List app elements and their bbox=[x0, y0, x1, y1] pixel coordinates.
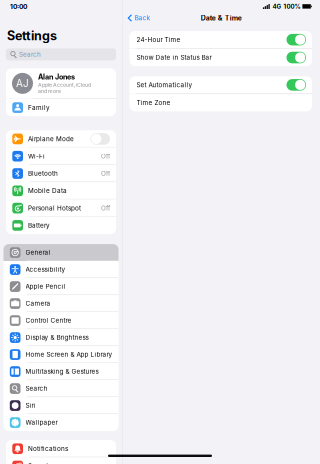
button[interactable]: Personal Hotspot bbox=[6, 199, 116, 217]
staticText: Date & Time bbox=[201, 14, 242, 22]
staticText: Apple Pencil bbox=[25, 283, 65, 290]
staticText: Accessibility bbox=[25, 266, 65, 273]
staticText: Mobile Data bbox=[28, 187, 67, 195]
staticText: Settings bbox=[7, 28, 57, 43]
staticText: Display & Brightness bbox=[25, 334, 88, 341]
staticText: Wi-Fi bbox=[28, 152, 45, 160]
staticText: 100% bbox=[283, 3, 300, 10]
staticText: Sounds bbox=[28, 462, 51, 464]
button[interactable]: Home Screen & App Library bbox=[3, 346, 118, 363]
staticText: General bbox=[25, 249, 50, 256]
staticText: Alan Jones bbox=[38, 72, 75, 81]
button[interactable]: Accessibility bbox=[3, 261, 118, 278]
button[interactable]: Wi-Fi bbox=[6, 148, 116, 165]
staticText: and more bbox=[38, 88, 61, 94]
button[interactable]: 24-Hour Time bbox=[129, 31, 312, 48]
button[interactable]: Control Centre bbox=[3, 312, 118, 329]
button[interactable]: Back bbox=[122, 12, 154, 24]
staticText: Camera bbox=[25, 300, 50, 307]
button[interactable]: Bluetooth bbox=[6, 165, 116, 182]
staticText: 24-Hour Time bbox=[136, 36, 180, 43]
staticText: Search bbox=[25, 385, 47, 392]
button[interactable]: AJ bbox=[6, 68, 116, 98]
staticText: Off bbox=[101, 152, 110, 160]
button[interactable]: Mobile Data bbox=[6, 182, 116, 199]
staticText: Bluetooth bbox=[28, 170, 58, 177]
button[interactable]: Notifications bbox=[6, 440, 116, 457]
staticText: Search bbox=[19, 50, 41, 58]
staticText: Wallpaper bbox=[25, 419, 57, 426]
button[interactable]: Time Zone bbox=[129, 94, 312, 111]
button[interactable]: Apple Pencil bbox=[3, 278, 118, 295]
button[interactable]: Display & Brightness bbox=[3, 329, 118, 346]
staticText: Back bbox=[134, 14, 149, 22]
staticText: AJ bbox=[16, 77, 29, 89]
staticText: Off bbox=[101, 204, 110, 212]
button[interactable]: Camera bbox=[3, 295, 118, 312]
staticText: Time Zone bbox=[136, 99, 170, 107]
button[interactable]: Multitasking & Gestures bbox=[3, 363, 118, 380]
button[interactable]: Show Date in Status Bar bbox=[129, 49, 312, 66]
staticText: Show Date in Status Bar bbox=[136, 54, 211, 61]
staticText: Control Centre bbox=[25, 317, 71, 324]
button[interactable]: Siri bbox=[3, 397, 118, 414]
button[interactable]: General bbox=[3, 244, 118, 261]
button[interactable]: Sounds bbox=[6, 457, 116, 464]
staticText: Home Screen & App Library bbox=[25, 351, 112, 358]
button[interactable]: Battery bbox=[6, 217, 116, 234]
staticText: 10:00 bbox=[10, 2, 27, 11]
staticText: Apple Account, iCloud bbox=[38, 82, 91, 88]
button[interactable]: Airplane Mode bbox=[6, 130, 116, 148]
staticText: Family bbox=[28, 104, 50, 111]
staticText: 4G bbox=[272, 3, 281, 10]
staticText: Airplane Mode bbox=[28, 135, 74, 143]
button[interactable]: Family bbox=[6, 99, 116, 116]
button[interactable]: Set Automatically bbox=[129, 76, 312, 93]
staticText: Battery bbox=[28, 222, 50, 229]
button[interactable]: Search bbox=[3, 380, 118, 397]
staticText: Personal Hotspot bbox=[28, 204, 81, 212]
staticText: Siri bbox=[25, 402, 35, 409]
staticText: Notifications bbox=[28, 445, 68, 453]
staticText: Set Automatically bbox=[136, 81, 192, 89]
staticText: Multitasking & Gestures bbox=[25, 368, 98, 375]
button[interactable]: Wallpaper bbox=[3, 414, 118, 431]
staticText: Off bbox=[101, 170, 110, 177]
